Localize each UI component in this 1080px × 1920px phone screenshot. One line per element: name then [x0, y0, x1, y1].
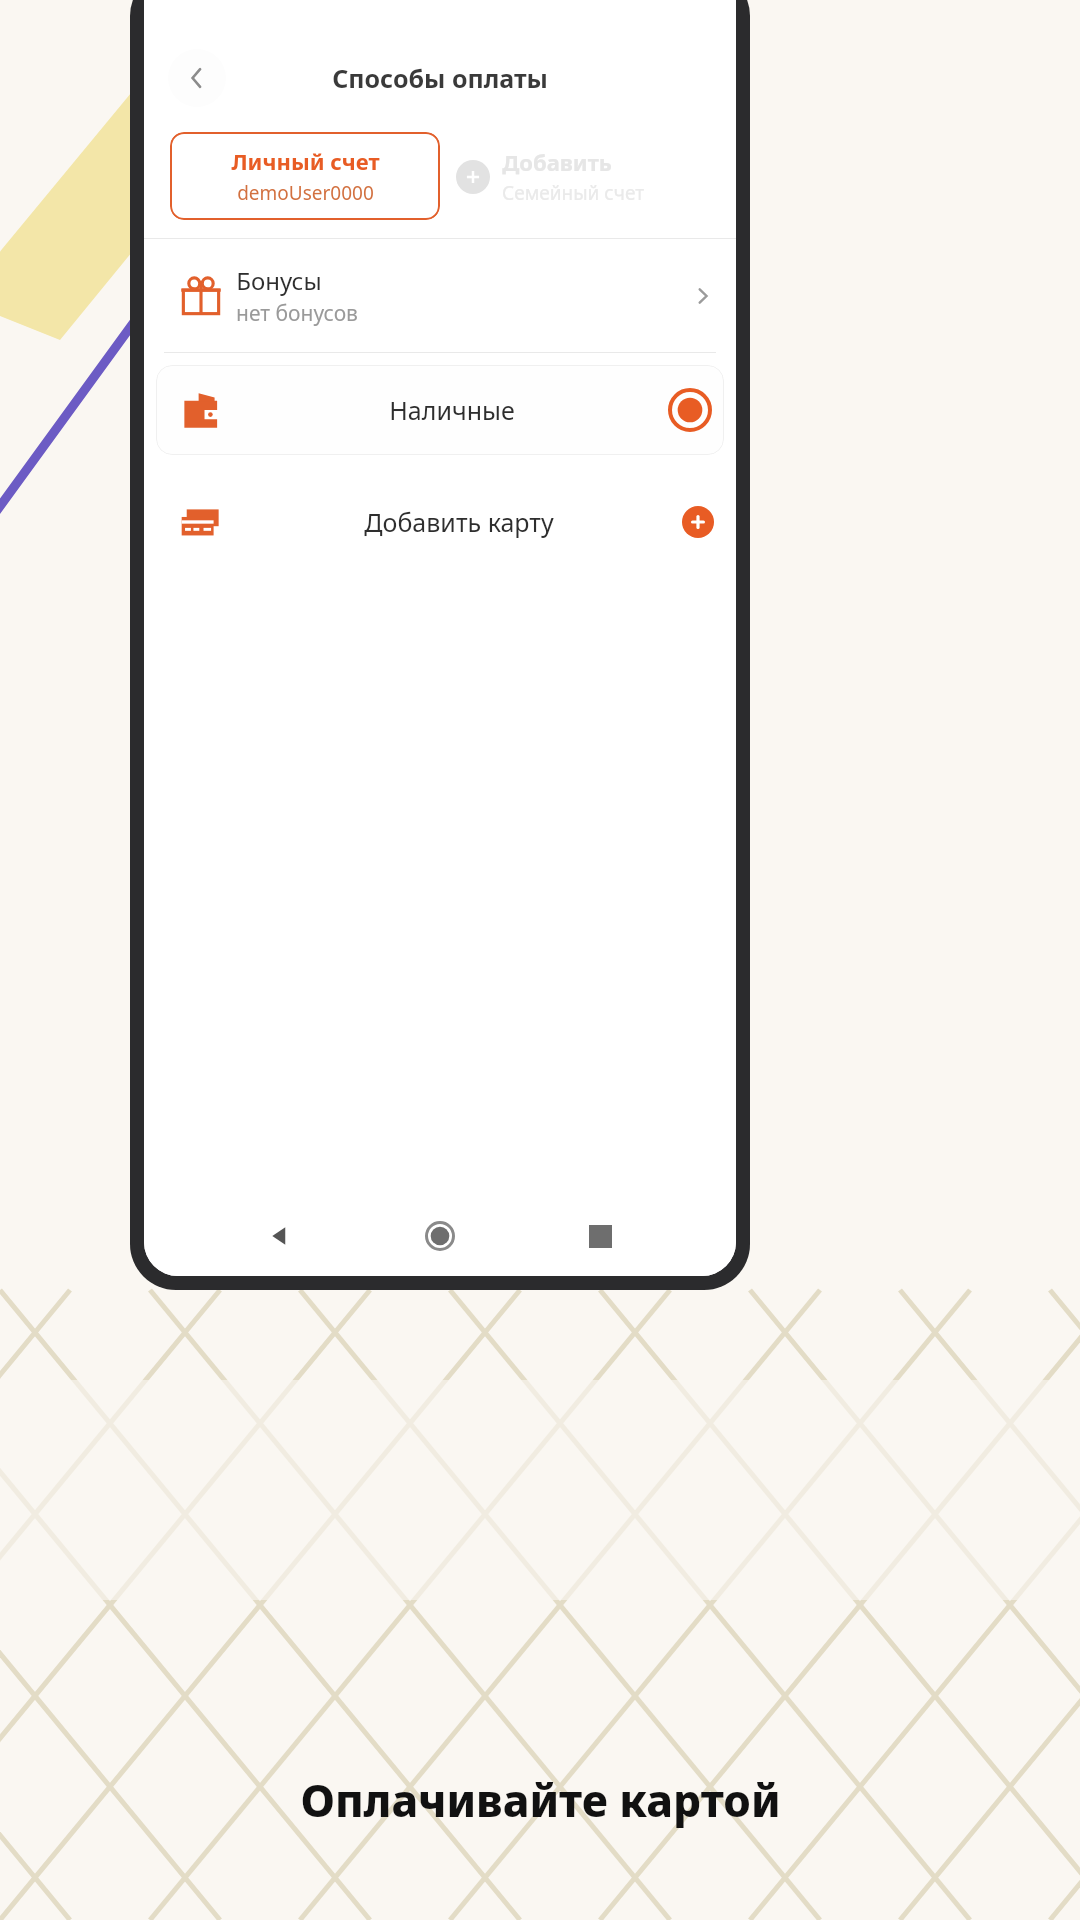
staticText: Добавить карту: [236, 505, 682, 539]
staticText: Оплачивайте картой: [300, 1770, 781, 1830]
button[interactable]: Home: [416, 1212, 464, 1260]
staticText: Добавить: [502, 147, 612, 177]
button[interactable]: Добавить: [456, 147, 652, 206]
staticText: Наличные: [236, 393, 668, 427]
staticText: нет бонусов: [236, 299, 358, 328]
staticText: Семейный счет: [502, 180, 644, 206]
button[interactable]: Личный счет: [170, 132, 440, 220]
staticText: Способы оплаты: [332, 61, 548, 95]
button[interactable]: Back: [256, 1212, 304, 1260]
staticText: Личный счет: [231, 146, 380, 176]
button[interactable]: Бонусы: [144, 239, 736, 352]
button[interactable]: Добавить карту: [144, 467, 736, 577]
button[interactable]: Back: [168, 49, 226, 107]
staticText: Бонусы: [236, 264, 322, 297]
button[interactable]: Наличные: [156, 365, 724, 455]
staticText: demoUser0000: [237, 180, 374, 206]
button[interactable]: Recents: [576, 1212, 624, 1260]
